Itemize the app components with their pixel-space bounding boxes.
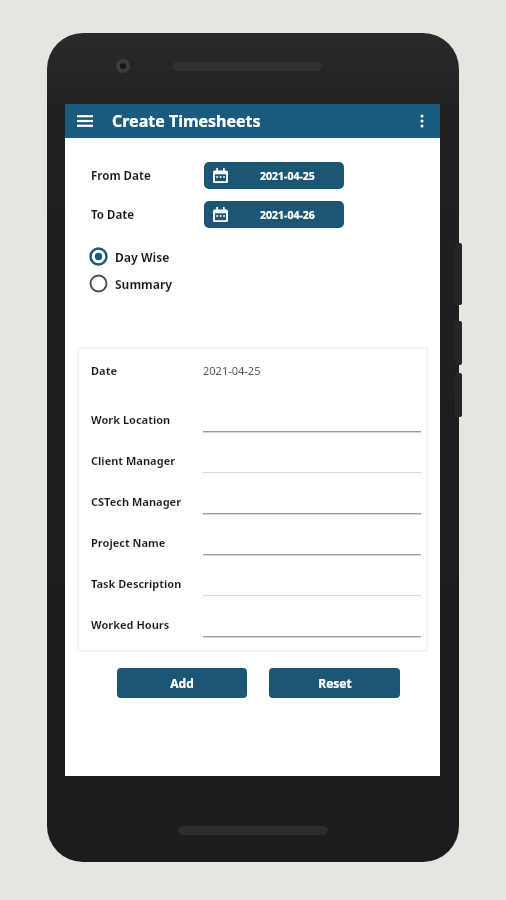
staticText: Reset: [318, 675, 352, 691]
staticText: CSTech Manager: [91, 494, 203, 509]
button[interactable]: 2021-04-25: [204, 162, 344, 189]
button[interactable]: Work Location: [91, 399, 421, 440]
staticText: Day Wise: [115, 249, 170, 265]
staticText: Summary: [115, 276, 173, 292]
staticText: Work Location: [91, 412, 203, 427]
staticText: Task Description: [91, 576, 203, 591]
staticText: To Date: [91, 207, 204, 223]
staticText: Add: [170, 675, 194, 691]
staticText: Create Timesheets: [112, 110, 261, 132]
staticText: Project Name: [91, 535, 203, 550]
button[interactable]: Summary: [88, 273, 440, 294]
staticText: 2021-04-25: [203, 363, 261, 378]
button[interactable]: Reset: [269, 668, 400, 698]
button[interactable]: Add: [117, 668, 247, 698]
button[interactable]: Worked Hours: [91, 604, 421, 645]
staticText: Worked Hours: [91, 617, 203, 632]
staticText: Date: [91, 363, 203, 378]
button[interactable]: CSTech Manager: [91, 481, 421, 522]
staticText: Client Manager: [91, 453, 203, 468]
button[interactable]: 2021-04-26: [204, 201, 344, 228]
button[interactable]: Task Description: [91, 563, 421, 604]
staticText: 2021-04-26: [260, 208, 315, 222]
button[interactable]: Project Name: [91, 522, 421, 563]
staticText: 2021-04-25: [260, 169, 315, 183]
button[interactable]: More options: [409, 108, 435, 134]
button[interactable]: Day Wise: [88, 246, 440, 267]
button[interactable]: Open navigation menu: [72, 108, 98, 134]
button[interactable]: Client Manager: [91, 440, 421, 481]
staticText: From Date: [91, 168, 204, 184]
